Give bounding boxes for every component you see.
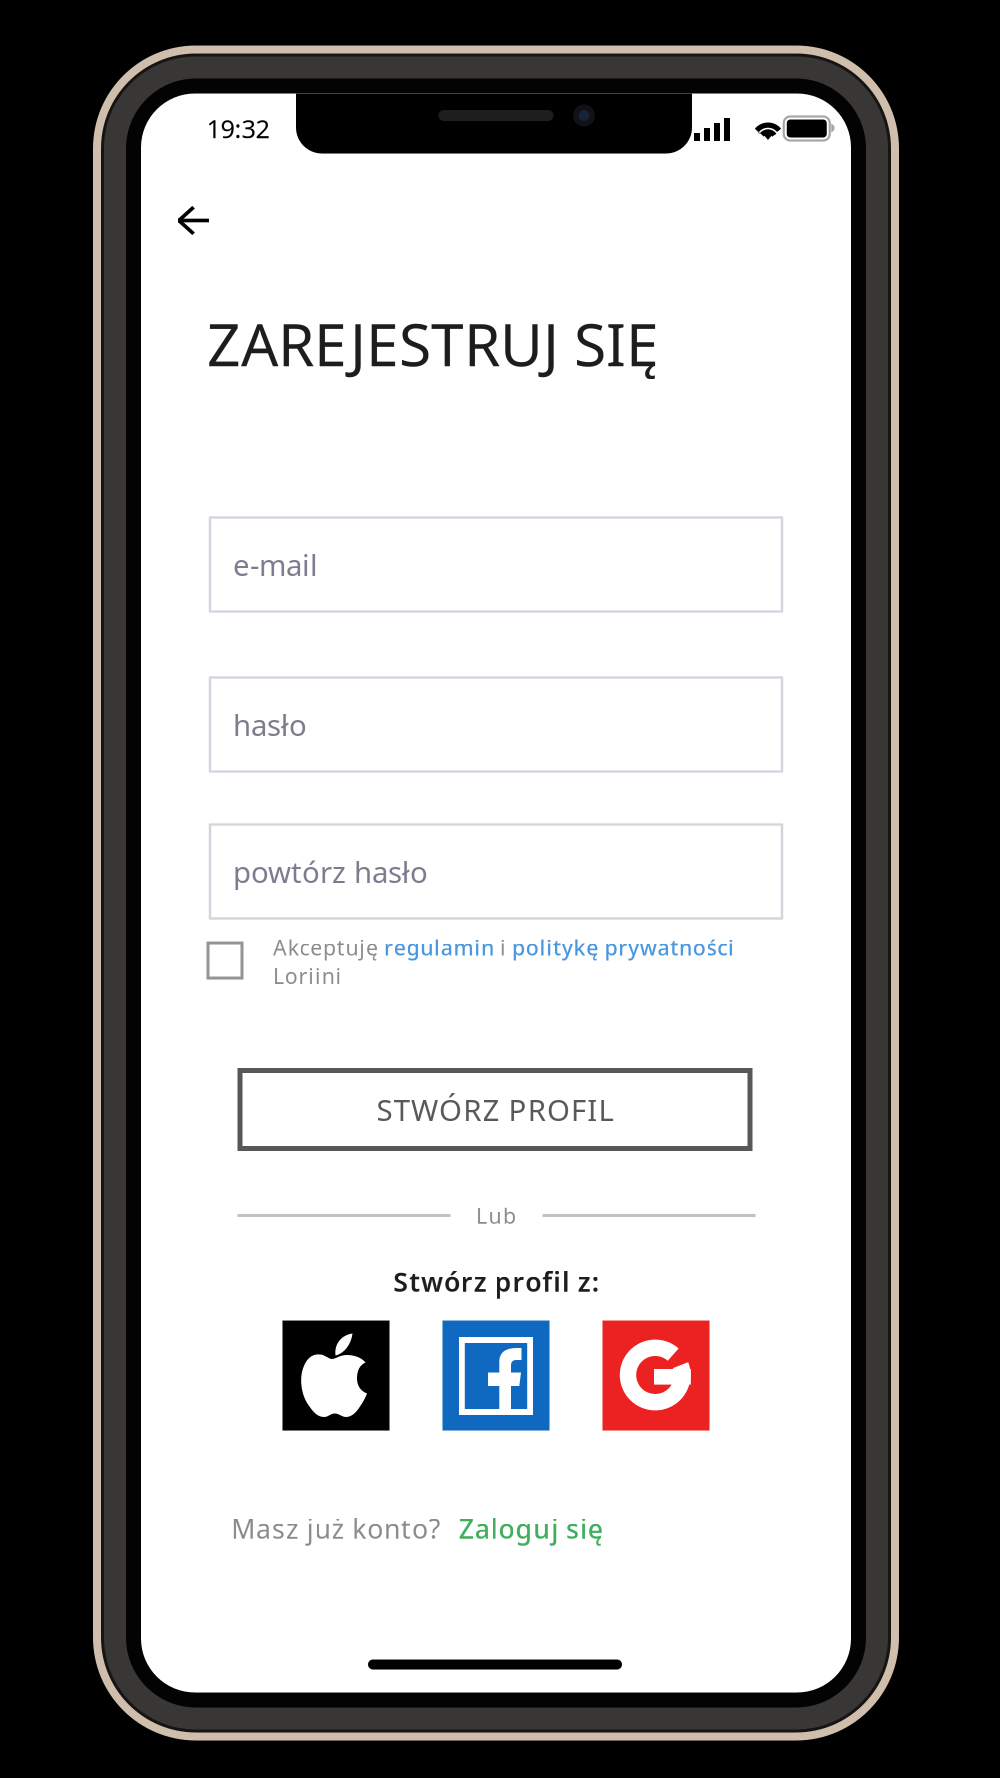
staticText: o [498, 1511, 514, 1546]
staticText: o [525, 1264, 541, 1299]
staticText: L [273, 961, 284, 990]
staticText: r [298, 961, 307, 990]
staticText: hasło [233, 705, 307, 744]
staticText: e [310, 933, 322, 961]
staticText: ę [588, 1511, 603, 1546]
button[interactable]: e-mail [210, 517, 782, 611]
staticText: g [515, 1511, 532, 1546]
staticText: y [562, 933, 573, 961]
button[interactable]: Sign up with Google [602, 1320, 709, 1430]
staticText: W [411, 1090, 438, 1129]
staticText: p [495, 1264, 512, 1299]
staticText: A [273, 933, 287, 961]
staticText: s [566, 1511, 579, 1546]
staticText: u [315, 1511, 331, 1546]
staticText: u [488, 1201, 501, 1230]
staticText: S [376, 1090, 392, 1129]
staticText: L [598, 1090, 613, 1129]
staticText: k [352, 1511, 366, 1546]
staticText: u [533, 1511, 550, 1546]
staticText: o [412, 1511, 428, 1546]
staticText: o [693, 933, 706, 961]
staticText: o [526, 933, 539, 961]
staticText: e-mail [233, 545, 318, 584]
staticText: F [571, 1090, 586, 1129]
staticText: ś [706, 933, 716, 961]
staticText: k [288, 933, 299, 961]
staticText: S [393, 1264, 408, 1299]
staticText: P [508, 1090, 526, 1129]
staticText: k [573, 933, 585, 961]
staticText: ż [331, 1511, 344, 1546]
staticText: s [272, 1511, 285, 1546]
staticText: i [315, 961, 321, 990]
staticText: m [453, 933, 473, 961]
staticText: R [463, 1090, 481, 1129]
staticText: l [491, 1511, 498, 1546]
staticText: ó [444, 1264, 460, 1299]
staticText: i [728, 933, 734, 961]
staticText: n [481, 933, 494, 961]
staticText: t [409, 1264, 420, 1299]
button[interactable]: Sign up with Facebook [442, 1320, 549, 1430]
staticText: i [474, 933, 480, 961]
staticText: p [512, 933, 525, 961]
staticText: T [394, 1090, 410, 1129]
staticText: n [322, 961, 335, 990]
staticText: g [406, 933, 419, 961]
staticText: Ó [439, 1090, 462, 1129]
staticText: 19:32 [206, 112, 269, 145]
staticText: w [421, 1264, 443, 1299]
staticText: o [285, 961, 298, 990]
button[interactable]: hasło [210, 677, 782, 771]
staticText: r [384, 933, 393, 961]
staticText: b [503, 1201, 516, 1230]
staticText: ę [586, 933, 598, 961]
staticText: : [592, 1264, 599, 1299]
button[interactable]: Back [152, 178, 236, 262]
button[interactable]: M [231, 1501, 603, 1556]
staticText: ZAREJESTRUJ SIĘ [207, 304, 659, 382]
staticText: c [299, 933, 309, 961]
staticText: i [500, 933, 506, 961]
staticText: l [434, 933, 440, 961]
staticText: Z [459, 1511, 474, 1546]
staticText: z [578, 1264, 591, 1299]
staticText: t [670, 933, 678, 961]
button[interactable]: Accept the terms [194, 929, 256, 992]
staticText: j [359, 933, 365, 961]
staticText: c [717, 933, 727, 961]
staticText: t [553, 933, 561, 961]
staticText: j [551, 1511, 558, 1546]
staticText: y [628, 933, 639, 961]
staticText: a [441, 933, 453, 961]
staticText: a [657, 933, 669, 961]
staticText: l [539, 933, 545, 961]
staticText: t [337, 933, 345, 961]
staticText: p [604, 933, 617, 961]
staticText: R [528, 1090, 546, 1129]
staticText: i [580, 1511, 587, 1546]
button[interactable]: powtórz hasło [210, 824, 782, 918]
staticText: n [384, 1511, 400, 1546]
staticText: j [307, 1511, 314, 1546]
staticText: L [476, 1201, 487, 1230]
staticText: z [474, 1264, 487, 1299]
staticText: i [308, 961, 314, 990]
staticText: ? [429, 1511, 441, 1546]
staticText: r [512, 1264, 524, 1299]
staticText: powtórz hasło [233, 852, 428, 891]
staticText: p [323, 933, 336, 961]
staticText: e [394, 933, 406, 961]
button[interactable]: S [240, 1070, 750, 1148]
staticText: a [256, 1511, 271, 1546]
staticText: M [231, 1511, 255, 1546]
staticText: n [679, 933, 692, 961]
staticText: t [401, 1511, 411, 1546]
staticText: l [562, 1264, 570, 1299]
staticText: I [587, 1090, 597, 1129]
staticText: ę [366, 933, 378, 961]
staticText: O [547, 1090, 570, 1129]
button[interactable]: Sign up with Apple [282, 1320, 389, 1430]
staticText: a [475, 1511, 490, 1546]
